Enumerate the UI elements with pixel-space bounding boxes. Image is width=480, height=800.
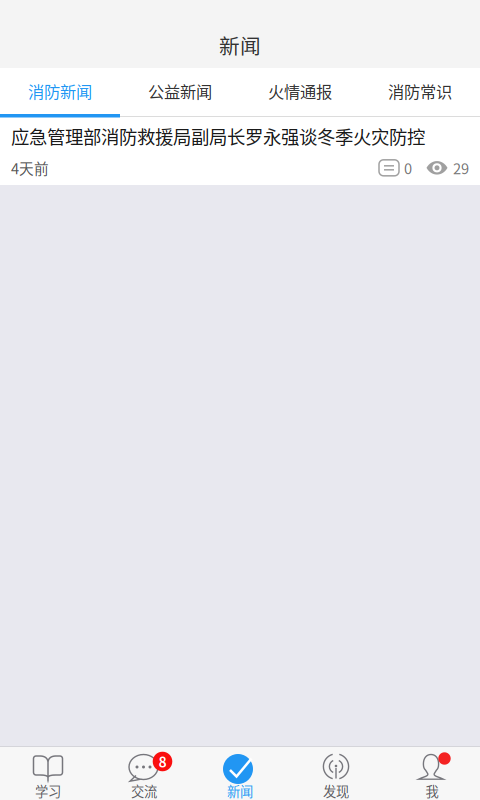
staticText: 交流	[131, 781, 157, 800]
staticText: 火情通报	[268, 79, 332, 103]
staticText: 消防新闻	[28, 79, 92, 103]
staticText: 学习	[35, 781, 61, 800]
staticText: 公益新闻	[148, 79, 212, 103]
staticText: 新闻	[227, 781, 253, 800]
staticText: 0	[404, 157, 412, 178]
staticText: 我	[425, 781, 438, 800]
button[interactable]: 学习	[0, 747, 96, 800]
staticText: 消防常识	[388, 79, 452, 103]
button[interactable]: 8	[96, 747, 192, 800]
button[interactable]: 消防新闻	[0, 68, 120, 114]
button[interactable]: 新闻	[192, 747, 288, 800]
button[interactable]: 我	[384, 747, 480, 800]
staticText: 发现	[323, 781, 349, 800]
button[interactable]: 发现	[288, 747, 384, 800]
button[interactable]: 火情通报	[240, 68, 360, 114]
button[interactable]: 公益新闻	[120, 68, 240, 114]
staticText: 新闻	[219, 30, 261, 60]
staticText: 应急管理部消防救援局副局长罗永强谈冬季火灾防控	[11, 123, 425, 149]
staticText: 4天前	[11, 157, 49, 178]
staticText: 8	[158, 751, 166, 772]
button[interactable]: 消防常识	[360, 68, 480, 114]
staticText: 29	[453, 157, 469, 178]
button[interactable]: 应急管理部消防救援局副局长罗永强谈冬季火灾防控	[0, 118, 480, 185]
